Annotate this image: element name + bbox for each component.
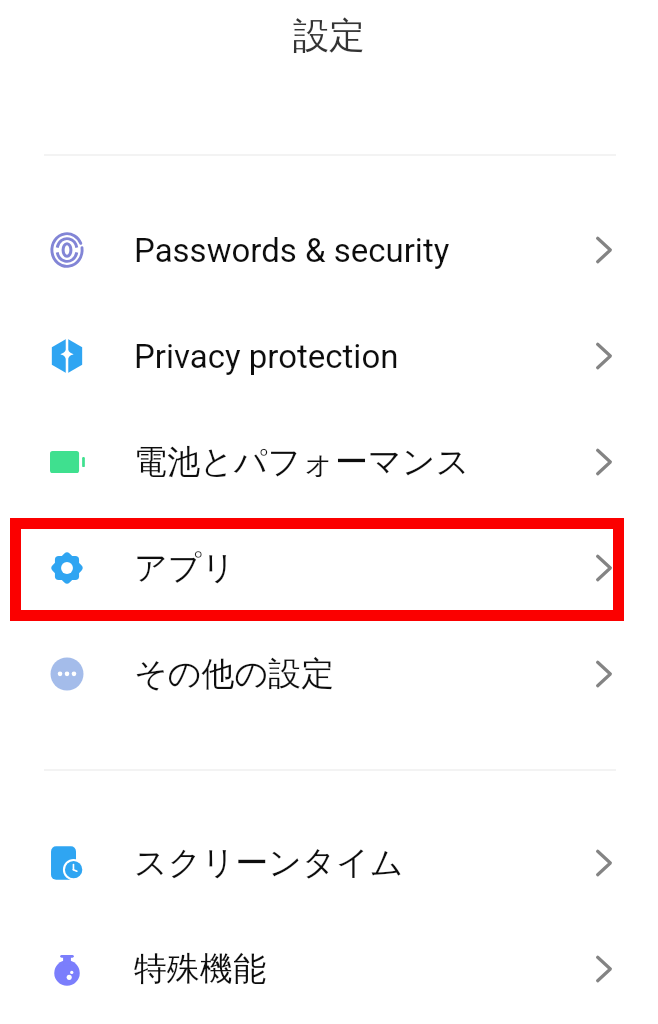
- other: Open アプリ: [589, 553, 619, 583]
- staticText: 電池とパフォーマンス: [134, 441, 470, 483]
- other: Open その他の設定: [589, 659, 619, 689]
- button[interactable]: スクリーンタイム: [0, 810, 658, 916]
- staticText: 設定: [0, 13, 658, 58]
- staticText: アプリ: [134, 547, 236, 589]
- other: Open Passwords & security: [589, 235, 619, 265]
- other: Open Privacy protection: [589, 341, 619, 371]
- other: Open スクリーンタイム: [589, 848, 619, 878]
- staticText: Privacy protection: [134, 337, 399, 376]
- button[interactable]: 特殊機能: [0, 916, 658, 1022]
- button[interactable]: 電池とパフォーマンス: [0, 409, 658, 515]
- button[interactable]: Privacy protection: [0, 303, 658, 409]
- button[interactable]: Passwords & security: [0, 197, 658, 303]
- staticText: その他の設定: [134, 653, 335, 695]
- button[interactable]: その他の設定: [0, 621, 658, 727]
- staticText: Passwords & security: [134, 231, 450, 270]
- staticText: 特殊機能: [134, 948, 266, 990]
- button[interactable]: アプリ: [0, 515, 658, 621]
- staticText: スクリーンタイム: [134, 842, 404, 884]
- other: Open 特殊機能: [589, 954, 619, 984]
- other: Open 電池とパフォーマンス: [589, 447, 619, 477]
